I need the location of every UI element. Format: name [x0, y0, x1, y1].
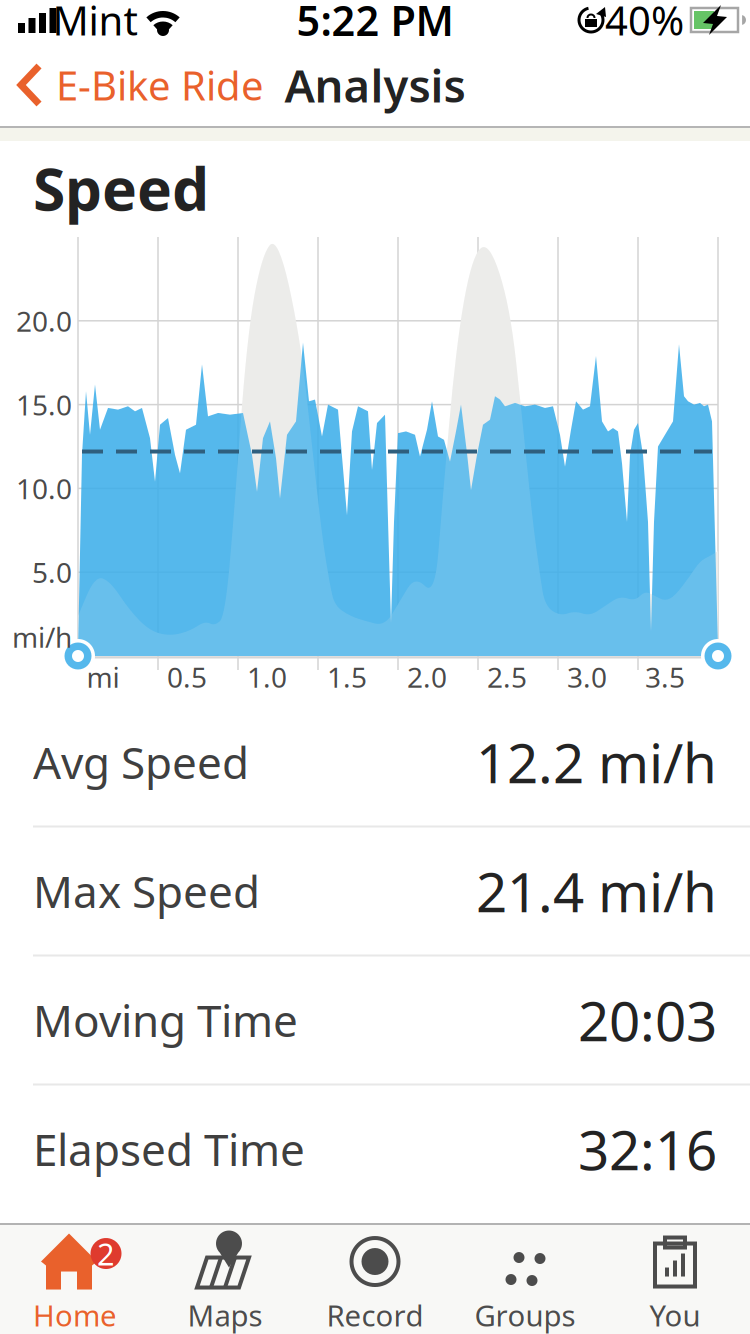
- staticText: 12.2 mi/h: [476, 726, 717, 798]
- staticText: You: [649, 1295, 700, 1334]
- staticText: 1.0: [247, 658, 287, 696]
- button[interactable]: Record: [310, 1230, 440, 1334]
- button[interactable]: Groups: [460, 1230, 590, 1334]
- staticText: 0.5: [167, 658, 207, 696]
- button[interactable]: Home: [10, 1230, 140, 1334]
- staticText: Moving Time: [33, 991, 298, 1049]
- staticText: mi: [86, 658, 119, 696]
- staticText: 3.5: [645, 658, 685, 696]
- staticText: Mint: [52, 0, 137, 46]
- staticText: 5:22 PM: [296, 0, 453, 47]
- staticText: Elapsed Time: [33, 1120, 305, 1178]
- staticText: Analysis: [284, 55, 465, 115]
- staticText: 20.0: [16, 302, 72, 339]
- staticText: 2.5: [487, 658, 527, 696]
- staticText: 32:16: [578, 1113, 717, 1185]
- staticText: Maps: [187, 1295, 262, 1334]
- staticText: Max Speed: [33, 862, 260, 920]
- staticText: 10.0: [16, 470, 72, 507]
- staticText: 2.0: [407, 658, 447, 696]
- staticText: Record: [326, 1295, 423, 1334]
- staticText: Avg Speed: [33, 733, 249, 791]
- staticText: 20:03: [578, 984, 717, 1056]
- button[interactable]: Maps: [160, 1230, 290, 1334]
- staticText: 40%: [605, 0, 684, 46]
- staticText: Speed: [33, 149, 209, 227]
- staticText: Groups: [474, 1295, 575, 1334]
- button[interactable]: Back: [18, 54, 348, 116]
- staticText: 21.4 mi/h: [476, 855, 717, 927]
- staticText: E-Bike Ride: [56, 58, 264, 111]
- staticText: 3.0: [567, 658, 607, 696]
- button[interactable]: You: [610, 1230, 740, 1334]
- staticText: 2: [97, 1233, 115, 1274]
- staticText: mi/h: [12, 618, 72, 656]
- staticText: 1.5: [327, 658, 367, 696]
- staticText: 15.0: [16, 386, 72, 423]
- staticText: 5.0: [32, 554, 72, 591]
- staticText: Home: [33, 1295, 117, 1334]
